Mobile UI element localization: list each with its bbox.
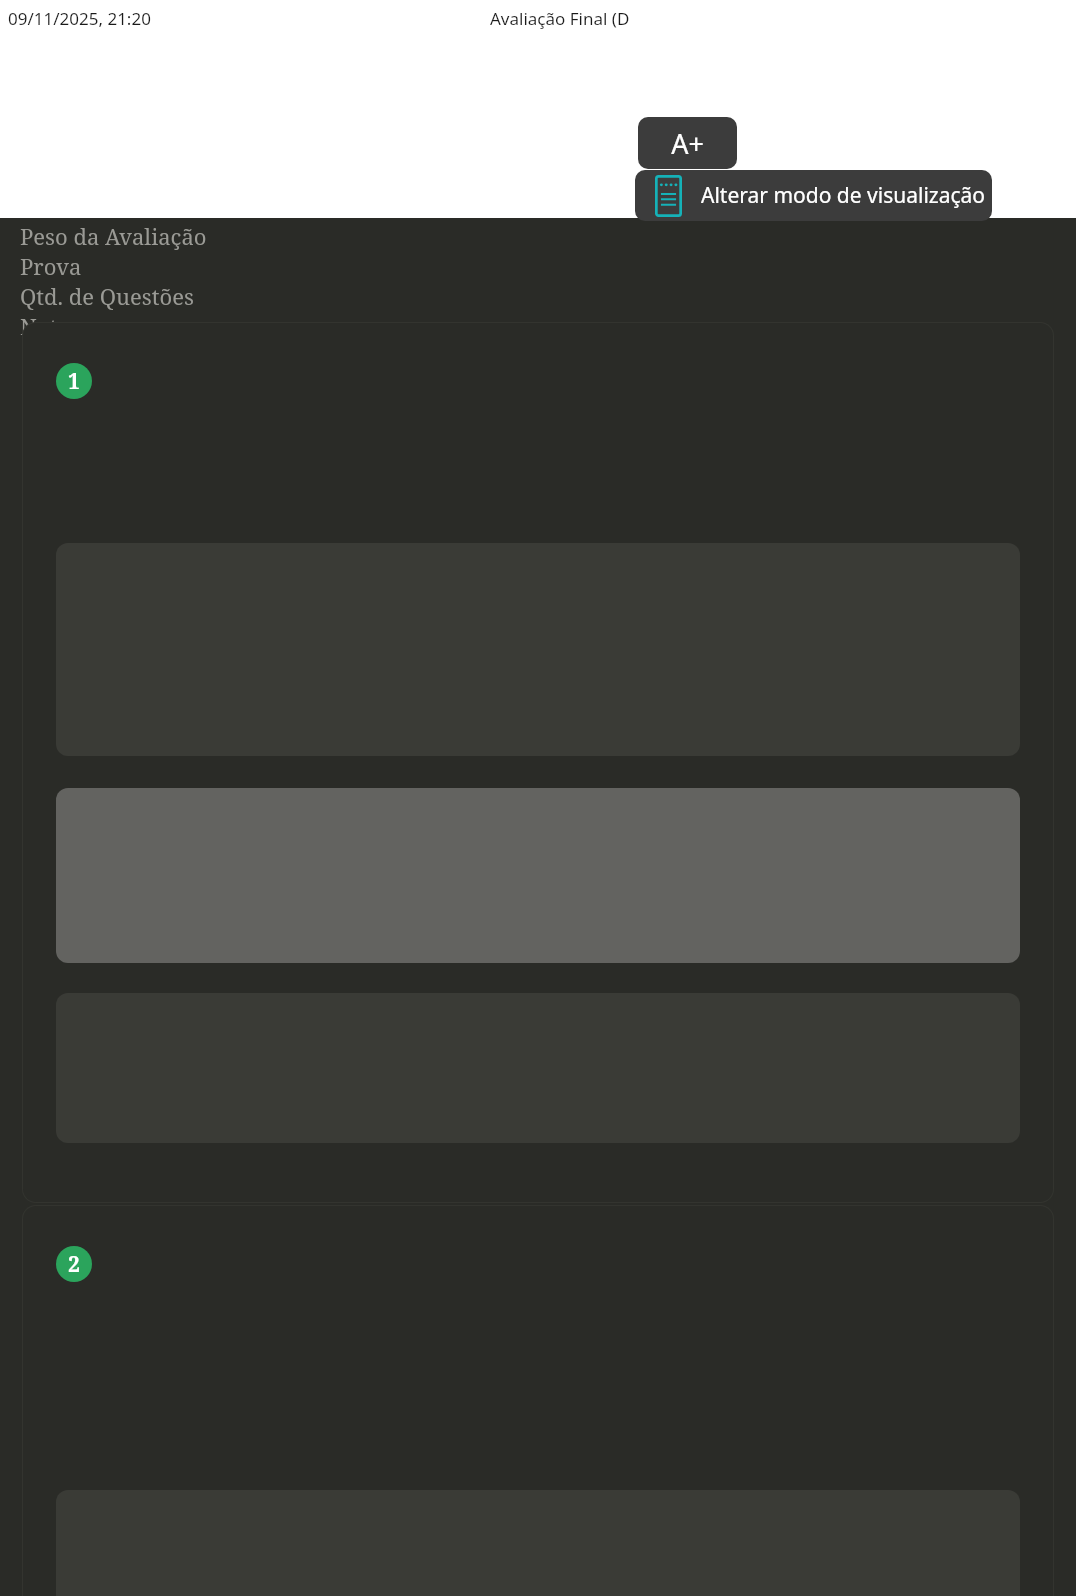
staticText: 09/11/2025, 21:20 (8, 7, 151, 30)
staticText: Qtd. de Questões (20, 281, 194, 311)
staticText: Avaliação Final (D (490, 7, 630, 30)
button[interactable]: Alterar modo de visualização (635, 170, 992, 221)
staticText: Peso da Avaliação (20, 221, 207, 251)
staticText: Prova (20, 251, 82, 281)
staticText: A+ (671, 125, 704, 162)
staticText: 1 (68, 367, 80, 396)
staticText: Nota (20, 311, 70, 341)
staticText: Alterar modo de visualização (701, 181, 986, 210)
button[interactable]: Aumentar fonte (638, 117, 737, 169)
button[interactable]: 1 (22, 322, 1054, 1203)
button[interactable]: 2 (22, 1205, 1054, 1596)
staticText: 2 (68, 1250, 80, 1279)
